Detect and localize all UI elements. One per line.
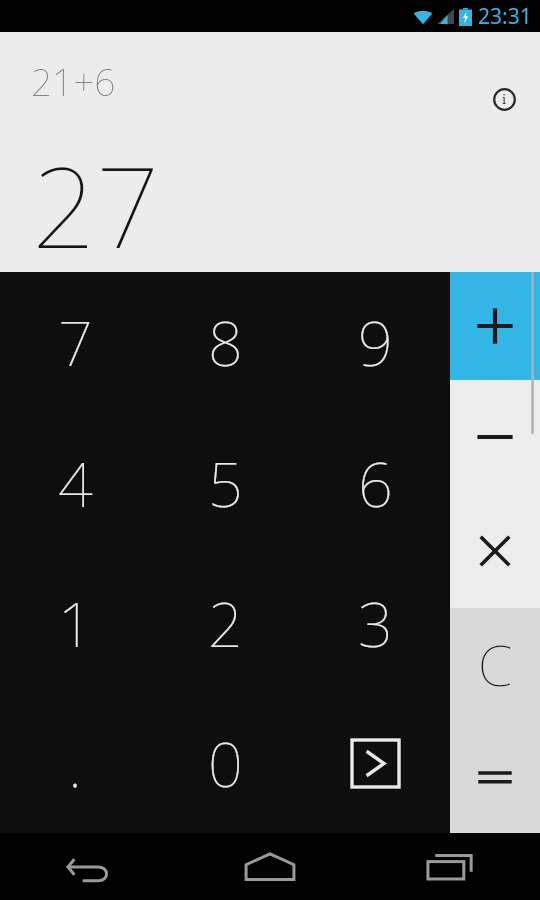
- button[interactable]: 9: [300, 272, 450, 413]
- staticText: 1: [58, 582, 93, 665]
- button[interactable]: 3: [300, 553, 450, 693]
- staticText: 21+6: [31, 56, 116, 106]
- staticText: 8: [208, 301, 243, 384]
- staticText: .: [68, 722, 82, 805]
- staticText: 0: [208, 722, 243, 805]
- button[interactable]: 0: [150, 693, 300, 833]
- button[interactable]: Plus: [450, 272, 540, 380]
- staticText: 3: [358, 582, 393, 665]
- staticText: 7: [58, 301, 93, 384]
- other: Signal: [437, 9, 454, 24]
- button[interactable]: Recent apps: [360, 833, 540, 900]
- button[interactable]: Home: [180, 833, 360, 900]
- button[interactable]: Multiply: [450, 494, 540, 608]
- staticText: C: [478, 626, 513, 702]
- staticText: 6: [358, 442, 393, 525]
- button[interactable]: 2: [150, 553, 300, 693]
- button[interactable]: 7: [0, 272, 150, 413]
- button[interactable]: Equals: [450, 720, 540, 833]
- button[interactable]: .: [0, 693, 150, 833]
- button[interactable]: Next: [300, 693, 450, 833]
- other: Wi-Fi: [413, 9, 433, 25]
- button[interactable]: Clear: [450, 608, 540, 720]
- staticText: 2: [208, 582, 243, 665]
- staticText: 4: [58, 442, 93, 525]
- staticText: 27: [32, 128, 160, 281]
- button[interactable]: 5: [150, 413, 300, 553]
- staticText: 23:31: [478, 2, 532, 31]
- staticText: i: [502, 90, 507, 108]
- button[interactable]: About: [487, 82, 521, 116]
- button[interactable]: Minus: [450, 380, 540, 494]
- staticText: 9: [358, 301, 393, 384]
- button[interactable]: 6: [300, 413, 450, 553]
- button[interactable]: Back: [0, 833, 180, 900]
- button[interactable]: 1: [0, 553, 150, 693]
- button[interactable]: 8: [150, 272, 300, 413]
- staticText: 5: [208, 442, 243, 525]
- other: Battery charging: [459, 8, 472, 26]
- button[interactable]: 4: [0, 413, 150, 553]
